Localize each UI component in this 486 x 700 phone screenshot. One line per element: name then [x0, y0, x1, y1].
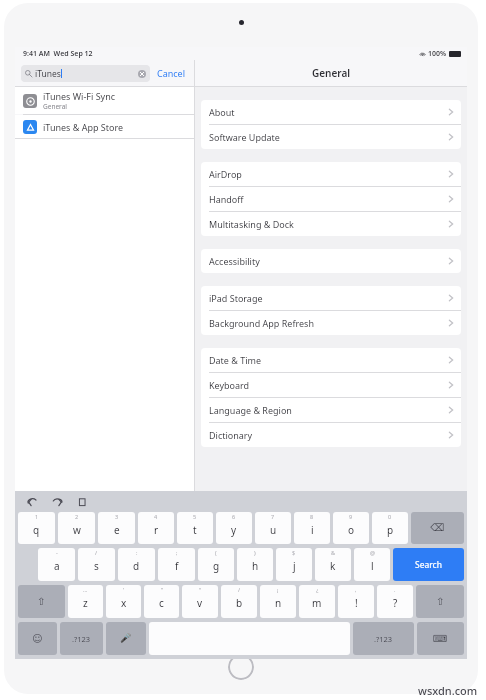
button[interactable]: /	[221, 585, 257, 618]
staticText: j	[293, 559, 296, 573]
button[interactable]: ¿	[299, 585, 335, 618]
staticText: 5	[193, 513, 197, 520]
staticText: r	[154, 523, 159, 537]
staticText: )	[254, 549, 256, 556]
staticText: ”	[161, 586, 163, 593]
staticText: ☺	[32, 633, 43, 645]
staticText: z	[83, 596, 88, 610]
staticText: k	[330, 559, 336, 573]
button[interactable]: “	[182, 585, 218, 618]
button[interactable]: iTunes & App Store	[15, 115, 194, 138]
button[interactable]: iTunes	[21, 65, 150, 82]
button[interactable]: .	[377, 585, 413, 618]
button[interactable]: 4	[138, 512, 174, 544]
staticText: /	[238, 586, 241, 593]
button[interactable]: Multitasking & Dock	[201, 212, 461, 236]
button[interactable]: Shift	[416, 585, 464, 618]
staticText: 7	[271, 513, 275, 520]
staticText: ?	[393, 596, 398, 610]
button[interactable]: ¡	[260, 585, 296, 618]
button[interactable]: Dictate	[106, 622, 146, 655]
button[interactable]: Redo	[51, 496, 63, 508]
button[interactable]: 2	[58, 512, 95, 544]
staticText: AirDrop	[209, 168, 242, 180]
button[interactable]: .?123	[60, 622, 103, 655]
button[interactable]: (	[198, 548, 234, 581]
staticText: Multitasking & Dock	[209, 218, 294, 230]
staticText: l	[371, 559, 374, 573]
staticText: ’	[123, 586, 124, 593]
button[interactable]: @	[354, 548, 390, 581]
button[interactable]: 0	[372, 512, 408, 544]
staticText: Handoff	[209, 193, 244, 205]
staticText: w	[73, 523, 81, 537]
staticText: ⌨	[433, 633, 448, 645]
button[interactable]: 3	[98, 512, 135, 544]
button[interactable]: AirDrop	[201, 162, 461, 186]
button[interactable]: Paste	[76, 496, 88, 508]
staticText: f	[175, 559, 179, 573]
staticText: q	[33, 523, 40, 537]
staticText: v	[197, 596, 203, 610]
button[interactable]: Dictionary	[201, 423, 461, 447]
staticText: 4	[154, 513, 158, 520]
button[interactable]: )	[237, 548, 273, 581]
staticText: i	[311, 523, 314, 537]
button[interactable]: :	[118, 548, 155, 581]
button[interactable]: Cancel	[155, 64, 188, 82]
staticText: iTunes Wi-Fi Sync	[43, 90, 116, 102]
button[interactable]: $	[276, 548, 312, 581]
button[interactable]: Backspace	[411, 512, 464, 544]
button[interactable]: Emoji	[18, 622, 57, 655]
button[interactable]: Date & Time	[201, 348, 461, 372]
button[interactable]: Handoff	[201, 187, 461, 211]
button[interactable]: 6	[216, 512, 252, 544]
staticText: (	[215, 549, 217, 556]
button[interactable]: .?123	[353, 622, 414, 655]
staticText: ⌫	[430, 522, 445, 534]
button[interactable]: ”	[144, 585, 179, 618]
button[interactable]: Search	[393, 548, 464, 581]
button[interactable]: -	[38, 548, 75, 581]
staticText: General	[43, 102, 67, 111]
staticText: e	[114, 523, 120, 537]
staticText: a	[54, 559, 60, 573]
button[interactable]: Background App Refresh	[201, 311, 461, 335]
button[interactable]: About	[201, 100, 461, 124]
button[interactable]: Language & Region	[201, 398, 461, 422]
button[interactable]: Software Update	[201, 125, 461, 149]
staticText: Keyboard	[209, 379, 250, 391]
button[interactable]: 9	[333, 512, 369, 544]
button[interactable]: 7	[255, 512, 291, 544]
button[interactable]: 8	[294, 512, 330, 544]
button[interactable]: &	[315, 548, 351, 581]
button[interactable]: Accessibility	[201, 249, 461, 273]
button[interactable]: iPad Storage	[201, 286, 461, 310]
staticText: 🎤	[120, 633, 132, 644]
button[interactable]: 1	[18, 512, 55, 544]
staticText: d	[133, 559, 140, 573]
button[interactable]: Undo	[26, 496, 38, 508]
staticText: Date & Time	[209, 354, 262, 366]
staticText: .?123	[374, 634, 393, 644]
staticText: 3	[115, 513, 119, 520]
button[interactable]: Hide keyboard	[417, 622, 464, 655]
staticText: b	[236, 596, 243, 610]
button[interactable]: Shift	[18, 585, 65, 618]
button[interactable]: ;	[158, 548, 195, 581]
staticText: u	[270, 523, 277, 537]
button[interactable]: Keyboard	[201, 373, 461, 397]
button[interactable]: Clear	[138, 70, 146, 78]
button[interactable]: …	[68, 585, 103, 618]
staticText: Language & Region	[209, 404, 292, 416]
staticText: -	[56, 549, 58, 556]
button[interactable]: iTunes Wi-Fi Sync	[15, 87, 194, 114]
button[interactable]: /	[78, 548, 115, 581]
button[interactable]: ’	[106, 585, 141, 618]
staticText: ;	[176, 549, 178, 556]
staticText: Accessibility	[209, 255, 260, 267]
staticText: 8	[310, 513, 314, 520]
button[interactable]: ,	[338, 585, 374, 618]
button[interactable]: 5	[177, 512, 213, 544]
